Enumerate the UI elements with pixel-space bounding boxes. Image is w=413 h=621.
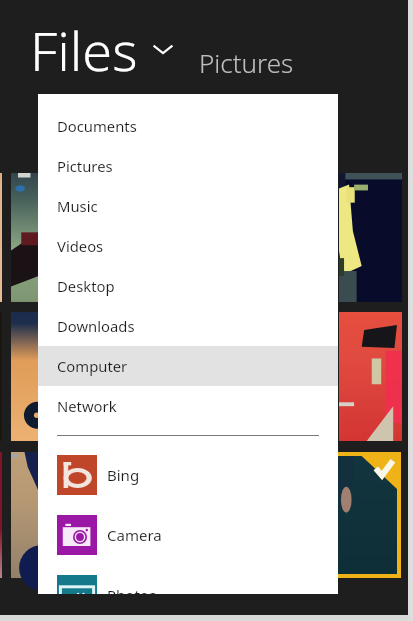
button[interactable]: Pictures — [38, 146, 338, 186]
staticText: Videos — [57, 236, 104, 256]
button[interactable]: Bing — [38, 445, 338, 505]
button[interactable]: Desktop — [38, 266, 338, 306]
button[interactable]: Camera — [38, 505, 338, 565]
staticText: Bing — [107, 465, 140, 485]
button[interactable]: Computer — [38, 346, 338, 386]
button[interactable]: Downloads — [38, 306, 338, 346]
button[interactable]: Files — [30, 13, 176, 75]
staticText: Desktop — [57, 276, 115, 296]
staticText: Pictures — [57, 156, 113, 176]
staticText: Files — [30, 13, 138, 75]
button[interactable]: Videos — [38, 226, 338, 266]
staticText: Documents — [57, 116, 137, 136]
staticText: Pictures — [199, 45, 294, 80]
button[interactable]: Documents — [38, 106, 338, 146]
staticText: Photos — [107, 585, 157, 594]
staticText: Camera — [107, 525, 162, 545]
button[interactable]: Network — [38, 386, 338, 426]
staticText: Music — [57, 196, 98, 216]
staticText: Network — [57, 396, 117, 416]
button[interactable]: Photos — [38, 565, 338, 594]
button[interactable]: Music — [38, 186, 338, 226]
staticText: Computer — [57, 356, 128, 376]
staticText: Downloads — [57, 316, 135, 336]
